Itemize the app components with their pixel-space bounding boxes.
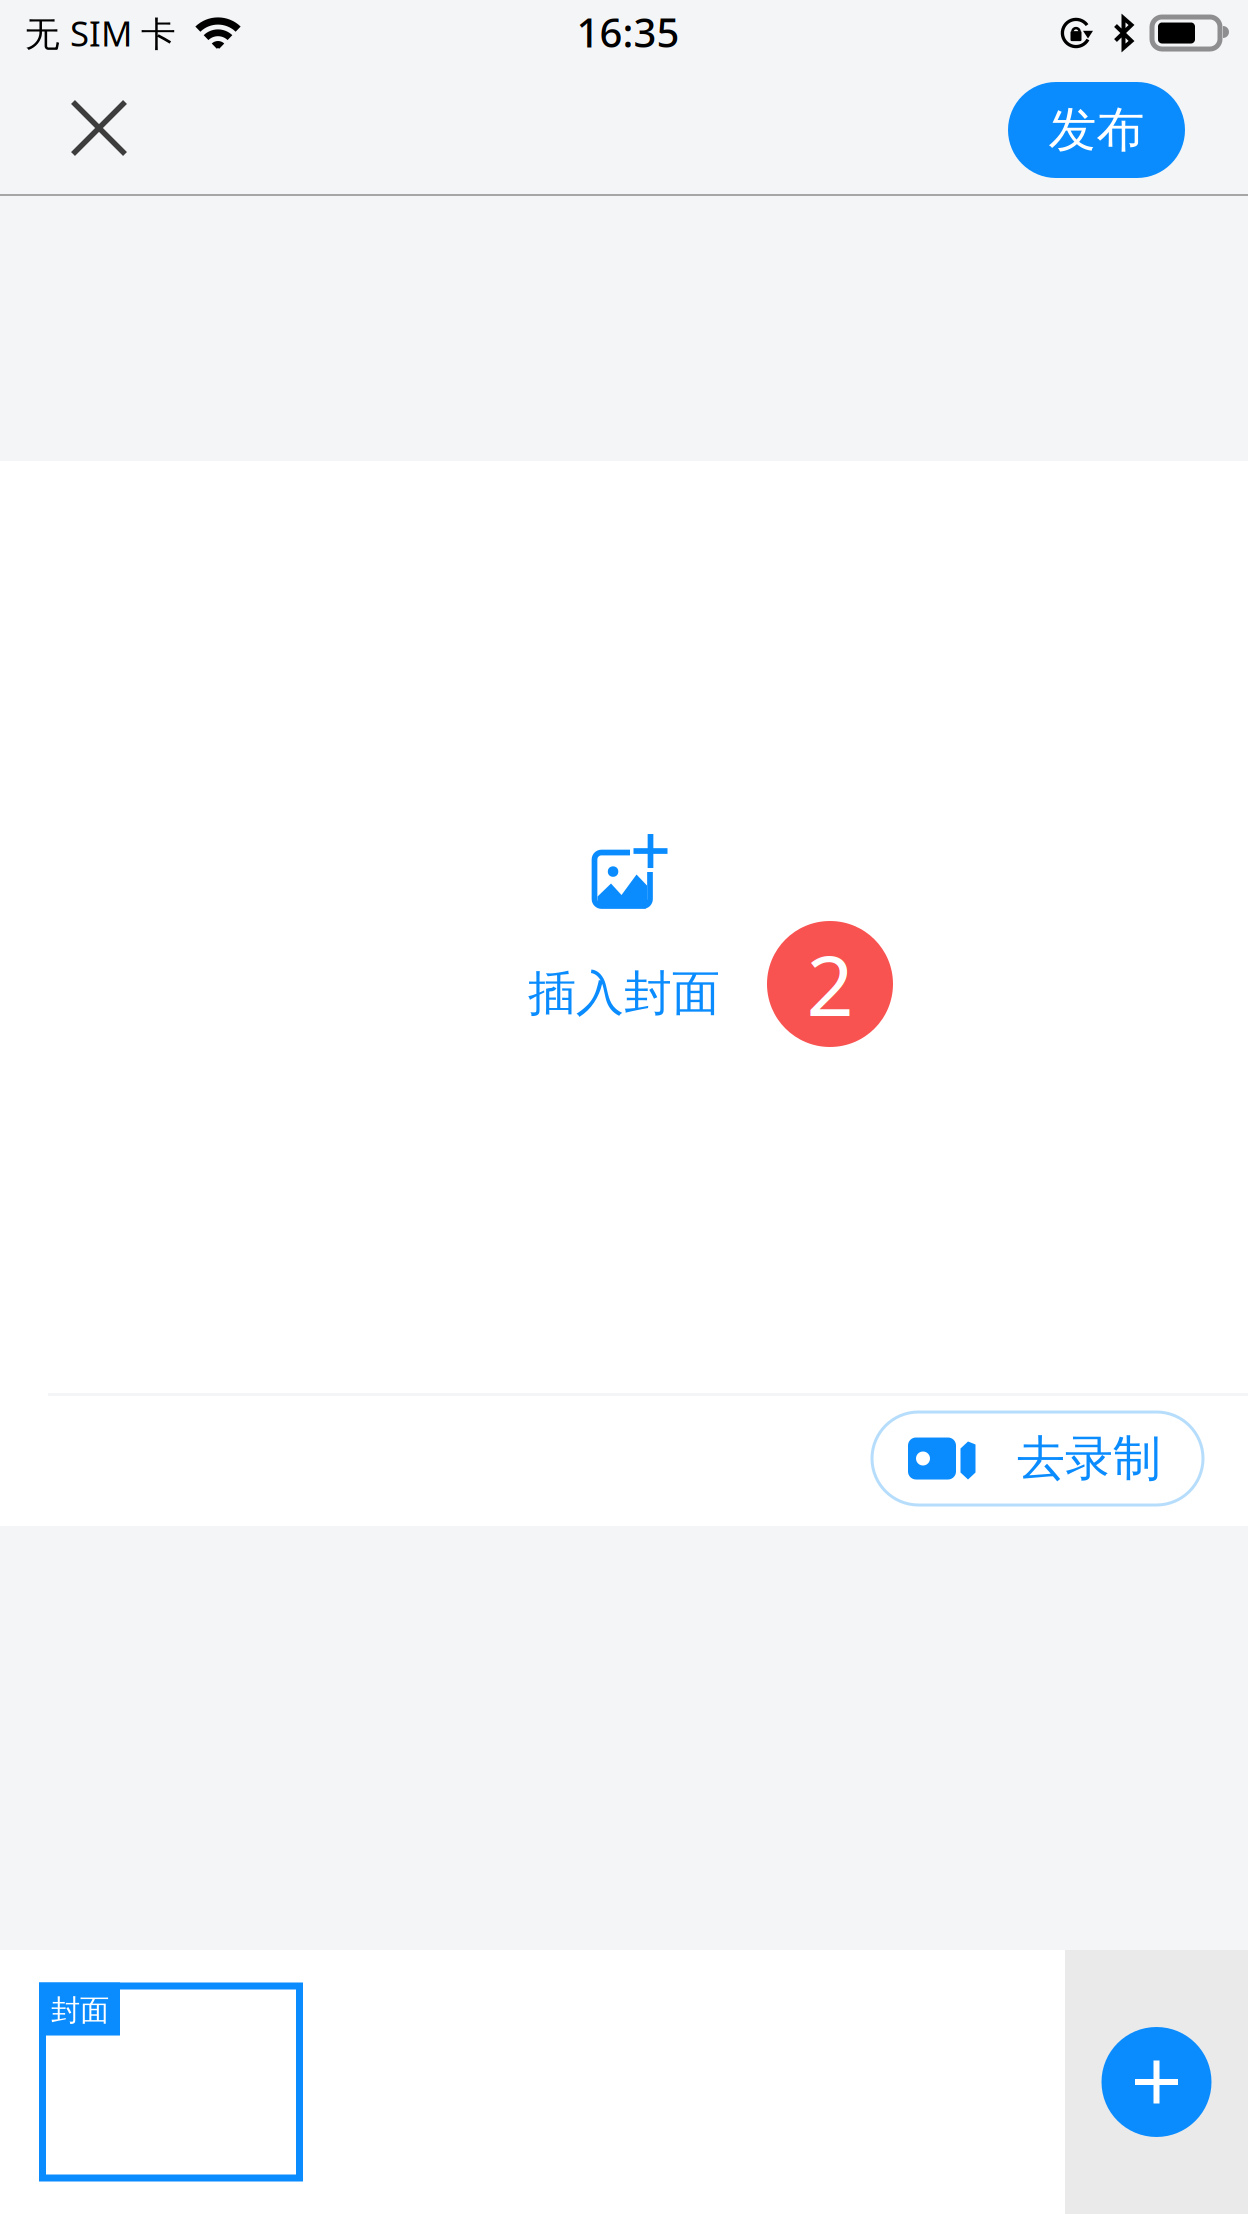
staticText: 封面 bbox=[51, 1992, 109, 2028]
staticText: 无 SIM 卡 bbox=[25, 10, 176, 56]
staticText: 16:35 bbox=[576, 5, 679, 58]
staticText: 去录制 bbox=[1017, 1429, 1161, 1488]
staticText: 插入封面 bbox=[528, 964, 720, 1023]
staticText: 2 bbox=[806, 929, 853, 1039]
button[interactable]: Add bbox=[1065, 1950, 1248, 2214]
button[interactable]: 去录制 bbox=[872, 1412, 1203, 1505]
button[interactable]: Close bbox=[24, 69, 170, 191]
staticText: 发布 bbox=[1048, 100, 1144, 159]
button[interactable]: 发布 bbox=[1008, 82, 1185, 178]
button[interactable]: Cover thumbnail bbox=[39, 1982, 303, 2181]
button[interactable]: 插入封面 bbox=[324, 787, 924, 1067]
